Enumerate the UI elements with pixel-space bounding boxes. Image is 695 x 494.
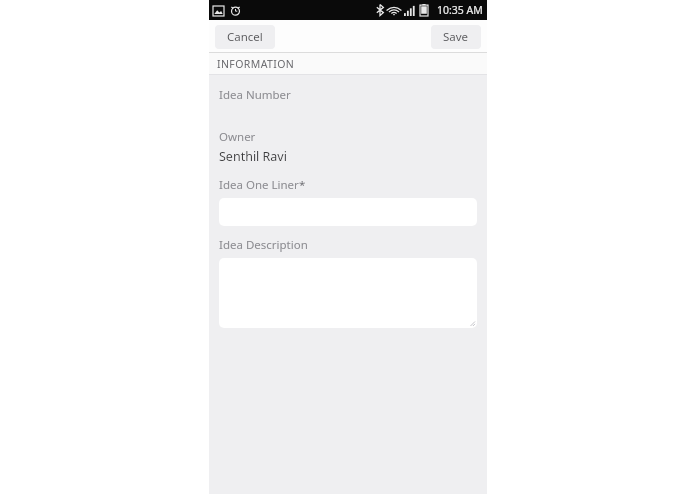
staticText: Owner <box>219 129 256 145</box>
staticText: Idea Number <box>219 87 291 103</box>
staticText: Cancel <box>227 29 263 45</box>
button[interactable]: Save <box>431 25 481 49</box>
button[interactable]: Cancel <box>215 25 275 49</box>
staticText: * <box>299 177 306 193</box>
staticText: INFORMATION <box>217 57 295 71</box>
staticText: Save <box>443 29 469 45</box>
staticText: Idea One Liner <box>219 177 299 193</box>
staticText: Idea Description <box>219 237 308 253</box>
staticText: 10:35 AM <box>437 3 483 17</box>
staticText: Senthil Ravi <box>219 148 287 165</box>
